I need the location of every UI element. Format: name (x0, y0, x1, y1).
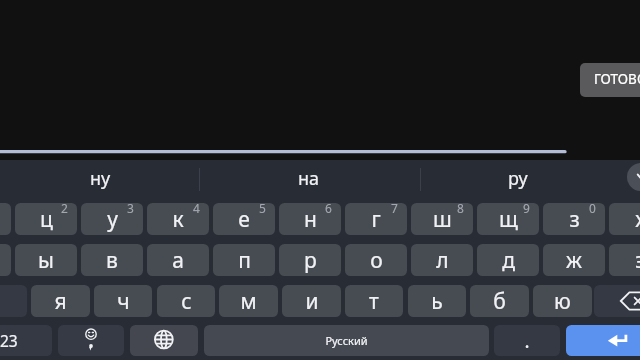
staticText: ц (40, 205, 53, 234)
staticText: р (304, 246, 317, 275)
button[interactable]: л (411, 244, 473, 276)
button[interactable]: к (147, 203, 209, 235)
button[interactable]: х (609, 203, 640, 235)
staticText: ру (508, 166, 528, 191)
staticText: щ (499, 205, 518, 234)
button[interactable]: ю (533, 285, 592, 317)
staticText: х (635, 205, 640, 234)
staticText: ь (431, 287, 443, 316)
button[interactable]: у (81, 203, 143, 235)
button[interactable]: р (279, 244, 341, 276)
staticText: у (107, 205, 118, 234)
button[interactable]: Emoji (58, 325, 124, 356)
button[interactable]: н (279, 203, 341, 235)
button[interactable]: б (470, 285, 529, 317)
staticText: Русский (325, 333, 368, 348)
staticText: е (238, 205, 250, 234)
button[interactable]: ГОТОВО (580, 63, 640, 97)
button[interactable]: э (609, 244, 640, 276)
button[interactable]: Enter (566, 325, 640, 356)
button[interactable]: о (345, 244, 407, 276)
staticText: э (635, 246, 640, 275)
staticText: з (569, 205, 580, 234)
staticText: б (493, 287, 506, 316)
staticText: т (369, 287, 379, 316)
staticText: ч (117, 287, 130, 316)
button[interactable]: ж (543, 244, 605, 276)
staticText: . (524, 328, 530, 354)
staticText: 2 (61, 203, 68, 216)
button[interactable]: д (477, 244, 539, 276)
staticText: о (370, 246, 383, 275)
button[interactable]: More suggestions (627, 163, 640, 191)
staticText: ю (554, 287, 571, 316)
button[interactable]: е (213, 203, 275, 235)
button[interactable]: ну (0, 160, 205, 196)
staticText: я (54, 287, 67, 316)
button[interactable]: ь (408, 285, 466, 317)
button[interactable]: й (0, 203, 11, 235)
button[interactable]: Backspace (594, 285, 640, 317)
staticText: 8 (457, 203, 464, 216)
button[interactable]: а (147, 244, 209, 276)
button[interactable]: ру (413, 160, 623, 196)
staticText: м (240, 287, 257, 316)
button[interactable]: м (219, 285, 278, 317)
button[interactable]: на (204, 160, 414, 196)
button[interactable]: п (213, 244, 275, 276)
staticText: 3 (127, 203, 134, 216)
staticText: ГОТОВО (594, 70, 640, 88)
staticText: на (298, 166, 320, 191)
staticText: 9 (523, 203, 530, 216)
button[interactable]: щ (477, 203, 539, 235)
staticText: л (436, 246, 449, 275)
staticText: с (181, 287, 192, 316)
staticText: 7 (391, 203, 398, 216)
staticText: н (304, 205, 317, 234)
button[interactable]: Русский (204, 325, 489, 356)
button[interactable]: т (345, 285, 403, 317)
staticText: ш (433, 205, 452, 234)
staticText: д (502, 246, 515, 275)
button[interactable]: ?123 (0, 325, 52, 356)
button[interactable]: Change keyboard (130, 325, 198, 356)
button[interactable]: с (157, 285, 215, 317)
button[interactable]: ф (0, 244, 11, 276)
staticText: 0 (589, 203, 596, 216)
staticText: 6 (325, 203, 332, 216)
button[interactable]: в (81, 244, 143, 276)
staticText: в (106, 246, 118, 275)
button[interactable]: я (31, 285, 90, 317)
staticText: г (371, 205, 381, 234)
staticText: 5 (259, 203, 266, 216)
staticText: и (305, 287, 319, 316)
staticText: ну (90, 166, 111, 191)
button[interactable]: и (282, 285, 341, 317)
staticText: ы (38, 246, 54, 275)
button[interactable]: ы (15, 244, 77, 276)
staticText: ?123 (0, 330, 18, 351)
staticText: а (172, 246, 184, 275)
button[interactable]: . (494, 325, 560, 356)
button[interactable]: з (543, 203, 605, 235)
staticText: п (238, 246, 251, 275)
button[interactable]: ш (411, 203, 473, 235)
staticText: ж (566, 246, 582, 275)
button[interactable]: ч (94, 285, 152, 317)
staticText: 4 (193, 203, 200, 216)
staticText: к (172, 205, 184, 234)
button[interactable]: г (345, 203, 407, 235)
button[interactable]: ц (15, 203, 77, 235)
